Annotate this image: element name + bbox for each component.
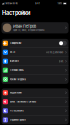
staticText: Apple ID, iCloud, медиаматериалы xyxy=(13,29,44,31)
staticText: Не беспокоить xyxy=(10,109,24,112)
button[interactable]: Сотовая связь xyxy=(1,66,68,75)
button[interactable]: Уведомления xyxy=(1,88,68,97)
staticText: 4G xyxy=(15,2,17,5)
button[interactable]: Звуки, тактильные сигналы xyxy=(1,97,68,106)
staticText: МегаФон xyxy=(5,2,14,5)
staticText: Настройки xyxy=(2,10,30,16)
staticText: 9:41 xyxy=(35,2,40,5)
staticText: Режим модема xyxy=(10,78,26,81)
staticText: Иван Петров xyxy=(13,24,36,29)
staticText: Bluetooth xyxy=(10,60,19,63)
button[interactable]: Wi-Fi xyxy=(1,48,68,57)
staticText: Экранное время xyxy=(10,118,26,121)
staticText: 100% xyxy=(57,2,62,5)
staticText: Вкл. xyxy=(59,60,64,63)
button[interactable]: Bluetooth xyxy=(1,57,68,66)
staticText: Авиарежим xyxy=(10,42,22,45)
staticText: Звуки, тактильные сигналы xyxy=(10,100,37,103)
button[interactable]: Режим модема xyxy=(1,75,68,84)
staticText: Wi-Fi xyxy=(10,51,16,54)
button[interactable]: Экранное время xyxy=(1,115,68,124)
button[interactable]: Авиарежим xyxy=(1,39,68,48)
staticText: Не подключено xyxy=(46,51,64,54)
button[interactable]: Иван Петров xyxy=(1,22,68,33)
staticText: Сотовая связь xyxy=(10,69,24,72)
staticText: Уведомления xyxy=(10,91,22,94)
button[interactable]: Не беспокоить xyxy=(1,106,68,115)
